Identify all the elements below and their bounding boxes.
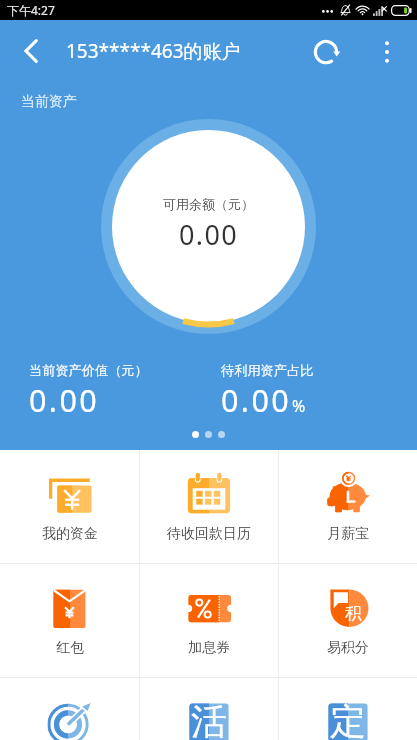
staticText: 活 <box>191 699 227 740</box>
staticText: 当前资产 <box>21 93 77 111</box>
staticText: 待收回款日历 <box>167 525 251 543</box>
staticText: 下午4:27 <box>7 2 55 18</box>
button[interactable]: 定 <box>279 678 417 740</box>
button[interactable]: 活 <box>140 678 278 740</box>
button[interactable]: 我的资金 <box>0 450 139 563</box>
button[interactable]: 月薪宝 <box>279 450 417 563</box>
staticText: 可用余额（元） <box>163 196 254 212</box>
staticText: 加息券 <box>188 639 230 657</box>
staticText: 我的资金 <box>42 525 98 543</box>
button[interactable]: Back <box>0 20 62 82</box>
button[interactable]: Refresh <box>298 25 354 81</box>
staticText: 月薪宝 <box>327 525 369 543</box>
staticText: 待利用资产占比 <box>221 362 314 379</box>
staticText: 积 <box>345 603 362 624</box>
button[interactable]: 待收回款日历 <box>140 450 278 563</box>
staticText: 当前资产价值（元） <box>29 362 148 379</box>
button[interactable]: 积 <box>279 564 417 677</box>
staticText: 0.00 <box>221 379 292 421</box>
staticText: 红包 <box>56 639 84 657</box>
staticText: % <box>292 395 306 417</box>
staticText: 易积分 <box>327 639 369 657</box>
button[interactable]: More options <box>365 30 408 73</box>
staticText: 153*****463的账户 <box>66 38 241 64</box>
button[interactable] <box>0 678 139 740</box>
button[interactable]: 加息券 <box>140 564 278 677</box>
button[interactable]: 红包 <box>0 564 139 677</box>
staticText: 定 <box>330 699 366 740</box>
staticText: 0.00 <box>179 216 239 253</box>
staticText: 0.00 <box>29 379 100 421</box>
